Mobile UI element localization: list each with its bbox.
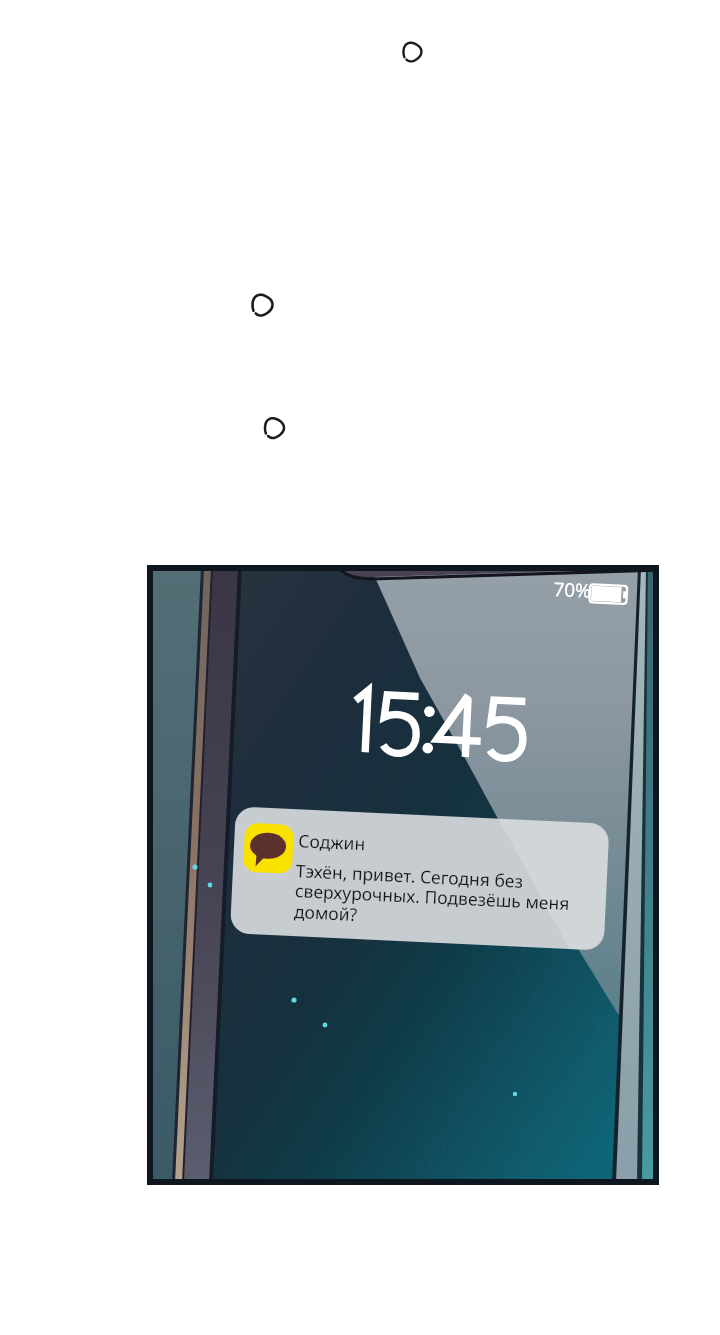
button[interactable] (0, 0, 720, 1335)
